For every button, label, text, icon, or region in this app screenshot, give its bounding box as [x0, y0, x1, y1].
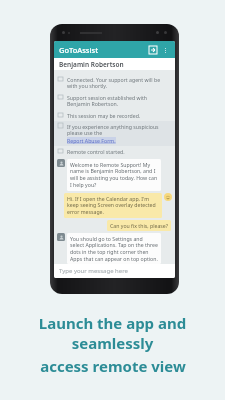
staticText: Connected. Your support agent will be wi…: [67, 76, 171, 90]
staticText: Benjamin Robertson: [59, 60, 124, 69]
staticText: GoToAssist: [59, 45, 99, 55]
staticText: You should go to Settings and select App…: [70, 235, 158, 262]
button[interactable]: Hi. If I open the Calendar app, I'm keep…: [64, 193, 162, 218]
staticText: This session may be recorded.: [67, 112, 141, 119]
staticText: If you experience anything suspicious pl…: [67, 123, 171, 137]
button[interactable]: Welcome to Remote Support! My name is Be…: [67, 159, 161, 191]
button[interactable]: Type your message here: [54, 264, 175, 278]
staticText: Remote control started.: [67, 148, 125, 155]
staticText: Can you fix this, please?: [110, 222, 168, 229]
button[interactable]: Benjamin Robertson: [54, 58, 175, 70]
staticText: Launch the app and seamlessly: [10, 313, 215, 353]
staticText: access remote view: [40, 356, 186, 376]
staticText: Hi. If I open the Calendar app, I'm keep…: [67, 195, 159, 216]
button[interactable]: Can you fix this, please?: [107, 220, 171, 231]
staticText: Type your message here: [59, 267, 128, 275]
button[interactable]: More options: [161, 44, 170, 56]
staticText: Support session established with Benjami…: [67, 94, 171, 108]
button[interactable]: End session: [147, 44, 159, 56]
staticText: Report Abuse Form.: [67, 137, 116, 144]
staticText: Welcome to Remote Support! My name is Be…: [70, 161, 158, 189]
button[interactable]: Report Abuse Form.: [67, 137, 116, 144]
button[interactable]: You should go to Settings and select App…: [67, 233, 161, 264]
